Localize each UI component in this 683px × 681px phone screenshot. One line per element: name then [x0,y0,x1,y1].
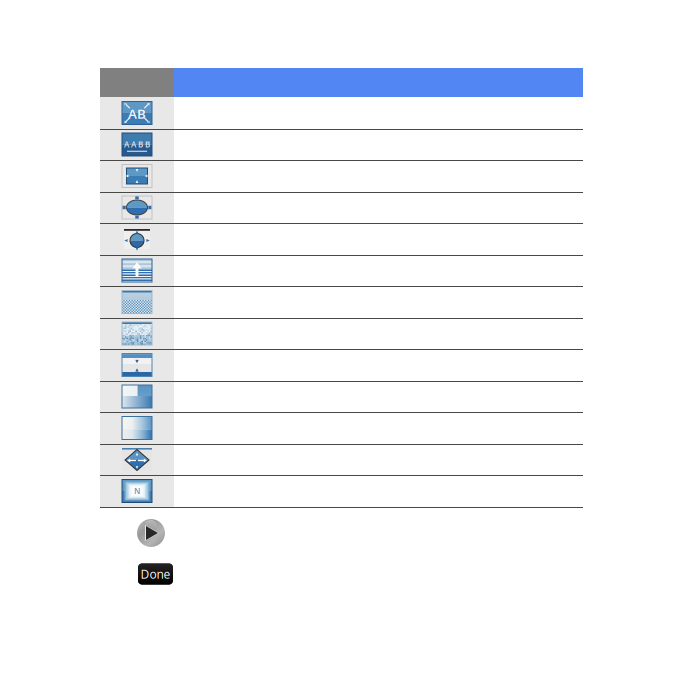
staticText: A A B B [124,139,150,150]
staticText: AB [128,105,146,122]
button[interactable]: Magic Move [100,97,583,129]
staticText: Done [140,566,170,582]
button[interactable]: Mosaic [100,286,583,318]
button[interactable]: Scale [100,160,583,192]
button[interactable]: Fade Through Color [100,412,583,444]
button[interactable]: Reveal [100,381,583,412]
button[interactable]: Doorway [100,349,583,381]
button[interactable]: Done [138,563,173,584]
button[interactable]: Diamond [100,444,583,475]
staticText: N [134,486,140,496]
button[interactable]: Text Push [100,129,583,160]
button[interactable]: Object Push [100,223,583,255]
button[interactable]: Shape [100,192,583,223]
button[interactable]: Blinds [100,255,583,286]
button[interactable]: Iris [100,475,583,507]
button[interactable]: Dissolve [100,318,583,349]
button[interactable]: Preview transition [137,519,165,547]
